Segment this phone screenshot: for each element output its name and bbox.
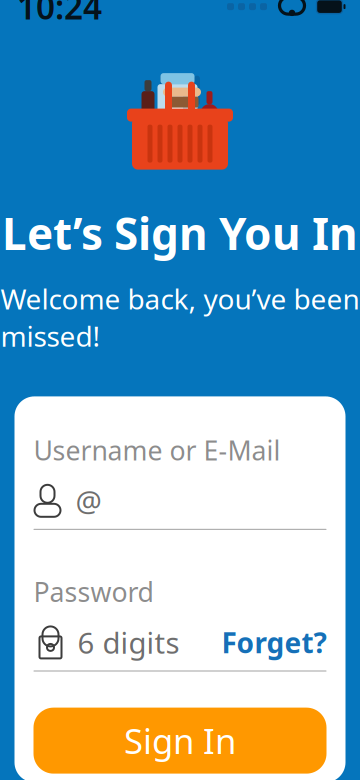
staticText: Username or E-Mail [33,432,280,468]
staticText: 6 digits [77,623,179,662]
staticText: @ [75,481,101,520]
staticText: 10:24 [17,0,102,29]
button[interactable]: Sign In [33,708,326,774]
staticText: Sign In [124,718,236,764]
button[interactable]: Forget? [213,620,326,665]
staticText: Forget? [221,624,326,661]
staticText: Password [33,574,153,609]
staticText: Let’s Sign You In [2,204,358,262]
staticText: Welcome back, you’ve been missed! [0,280,359,354]
